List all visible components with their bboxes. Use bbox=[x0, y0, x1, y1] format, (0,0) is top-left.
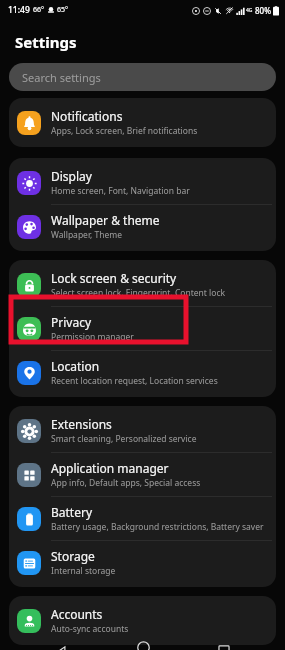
staticText: Home screen, Font, Navigation bar bbox=[51, 185, 190, 197]
staticText: App info, Default apps, Special access bbox=[51, 477, 201, 489]
button[interactable]: Back bbox=[41, 645, 81, 650]
button[interactable]: Lock screen & security bbox=[9, 263, 276, 306]
staticText: 4G bbox=[246, 7, 253, 14]
staticText: Permission manager bbox=[51, 331, 134, 343]
staticText: Location bbox=[51, 358, 100, 374]
staticText: Smart cleaning, Personalized service bbox=[51, 433, 197, 445]
button[interactable]: Battery bbox=[9, 497, 276, 540]
button[interactable]: Notifications bbox=[9, 101, 276, 144]
staticText: Lock screen & security bbox=[51, 270, 177, 286]
staticText: 65° bbox=[57, 5, 69, 15]
button[interactable]: Display bbox=[9, 161, 276, 204]
staticText: Battery usage, Background restrictions, … bbox=[51, 521, 264, 533]
staticText: Accounts bbox=[51, 606, 103, 622]
staticText: Search settings bbox=[22, 70, 101, 85]
staticText: Recent location request, Location servic… bbox=[51, 375, 218, 387]
button[interactable]: Wallpaper & theme bbox=[9, 205, 276, 248]
button[interactable]: Search settings bbox=[9, 63, 276, 91]
staticText: Extensions bbox=[51, 416, 112, 432]
staticText: Apps, Lock screen, Brief notifications bbox=[51, 125, 198, 137]
button[interactable]: Recent apps bbox=[204, 645, 244, 650]
button[interactable]: Accounts bbox=[9, 599, 276, 642]
staticText: 11:49 bbox=[8, 4, 30, 16]
staticText: Privacy bbox=[51, 314, 92, 330]
staticText: Settings bbox=[15, 32, 77, 52]
staticText: Application manager bbox=[51, 460, 169, 476]
staticText: Select screen lock, Fingerprint, Content… bbox=[51, 287, 226, 299]
staticText: Wallpaper & theme bbox=[51, 212, 160, 228]
staticText: Internal storage bbox=[51, 565, 116, 577]
button[interactable]: Storage bbox=[9, 541, 276, 584]
staticText: Wallpaper, Theme bbox=[51, 229, 123, 241]
button[interactable]: Home bbox=[123, 645, 163, 650]
staticText: Battery bbox=[51, 504, 93, 520]
staticText: 80% bbox=[255, 5, 271, 16]
button[interactable]: Application manager bbox=[9, 453, 276, 496]
staticText: Auto-sync accounts bbox=[51, 623, 129, 635]
button[interactable]: Extensions bbox=[9, 409, 276, 452]
button[interactable]: Privacy bbox=[9, 307, 276, 350]
staticText: Notifications bbox=[51, 108, 123, 124]
staticText: 66° bbox=[33, 5, 45, 15]
staticText: Display bbox=[51, 168, 92, 184]
button[interactable]: Location bbox=[9, 351, 276, 394]
staticText: Storage bbox=[51, 548, 95, 564]
